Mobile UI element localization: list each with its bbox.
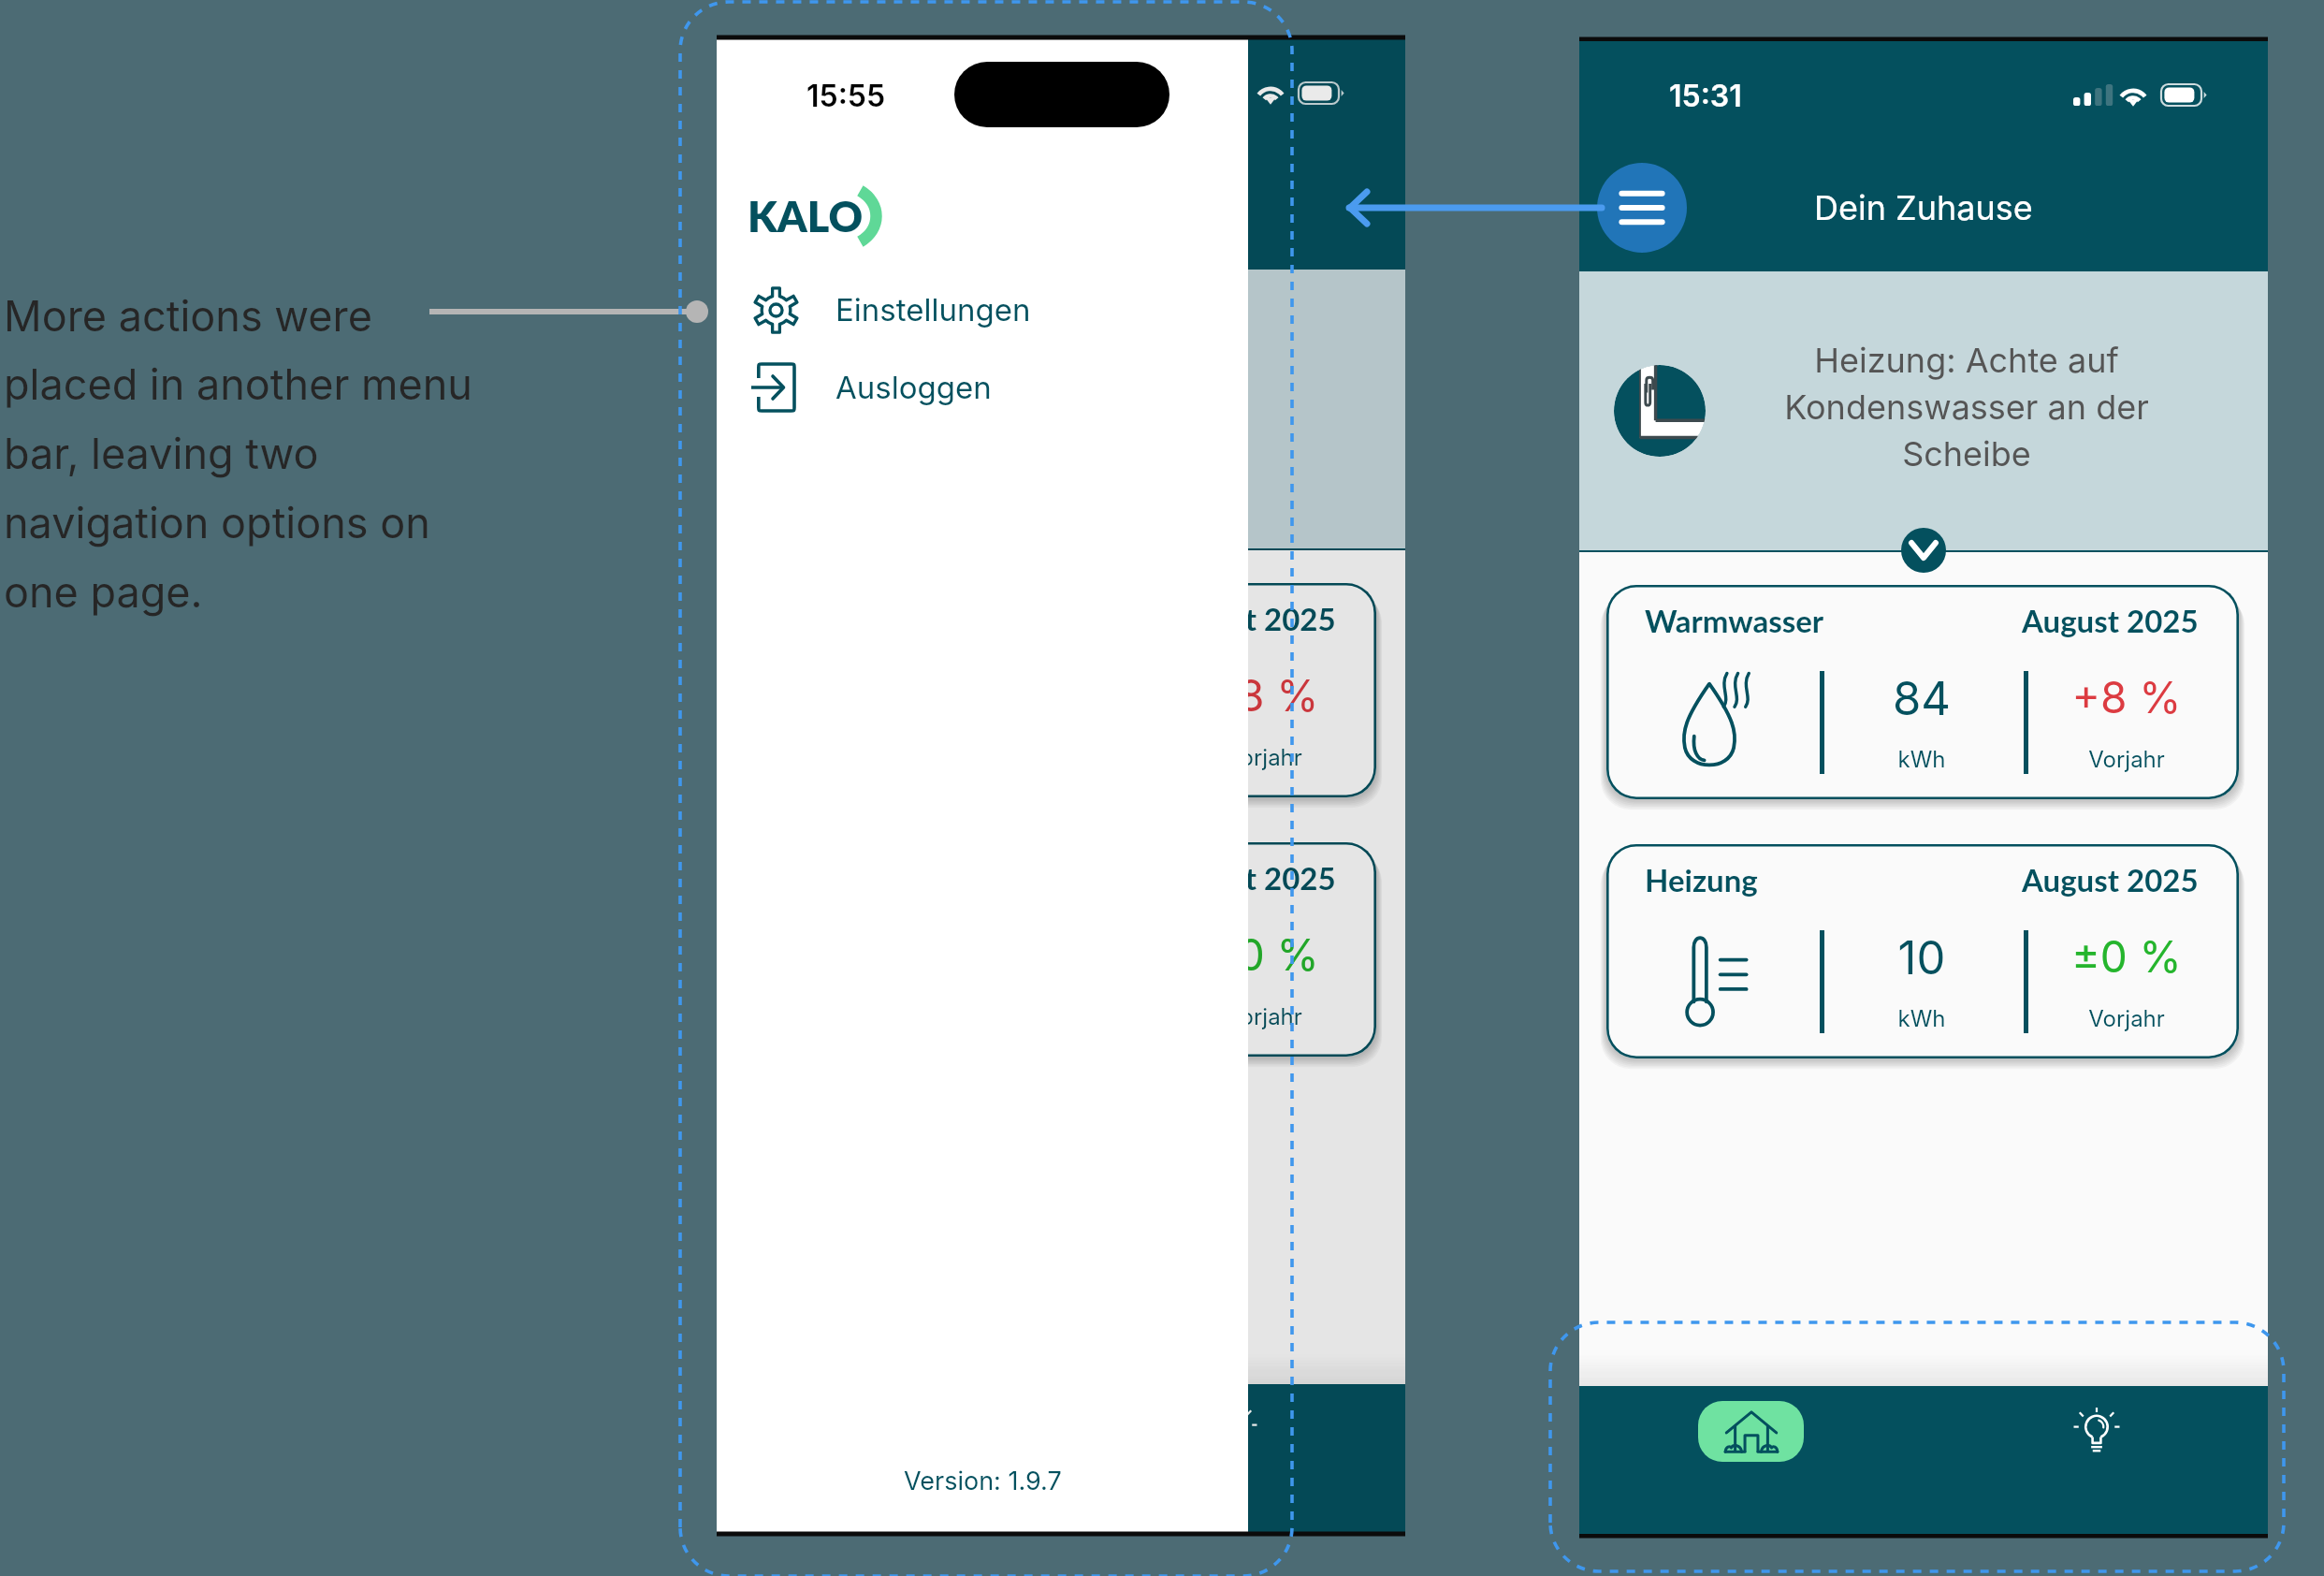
button[interactable]: Open navigation menu (1597, 163, 1687, 253)
staticText: Heizung: Achte auf Kondenswasser an der … (1784, 340, 2149, 474)
staticText: Dein Zuhause (1814, 187, 2033, 228)
staticText: August 2025 (1159, 600, 1336, 637)
staticText: Vorjahr (1168, 744, 1360, 771)
staticText: kWh (1824, 1005, 2019, 1032)
staticText: 15:55 (806, 78, 886, 114)
staticText: Einstellungen (835, 291, 1031, 328)
staticText: August 2025 (1159, 859, 1336, 897)
staticText: 15:31 (1669, 78, 1742, 114)
staticText: Vorjahr (2030, 1005, 2223, 1032)
staticText: Vorjahr (1168, 1003, 1360, 1030)
staticText: Heizung (1645, 861, 1758, 898)
button[interactable]: Heizung (1606, 844, 2239, 1058)
staticText: ±0 % (1168, 928, 1360, 981)
staticText: KALO (748, 191, 864, 241)
staticText: More actions were placed in another menu… (4, 290, 528, 618)
staticText: Ausloggen (835, 369, 992, 406)
staticText: August 2025 (2022, 861, 2199, 898)
button[interactable]: Expand tip (1901, 528, 1946, 573)
staticText: Version: 1.9.7 (904, 1466, 1062, 1496)
staticText: August 2025 (2022, 602, 2199, 639)
button[interactable]: Warmwasser (744, 583, 1376, 797)
button[interactable]: Ausloggen (726, 348, 1119, 427)
staticText: ±0 % (2030, 930, 2223, 983)
staticText: 84 (1824, 671, 2019, 726)
button[interactable]: Energy saving tips (2043, 1401, 2149, 1462)
button[interactable]: Home (1698, 1401, 1804, 1462)
staticText: Vorjahr (2030, 746, 2223, 773)
button[interactable]: Einstellungen (726, 270, 1119, 349)
staticText: kWh (1824, 746, 2019, 773)
button[interactable]: Warmwasser (1606, 585, 2239, 799)
staticText: +8 % (2030, 671, 2223, 723)
staticText: Warmwasser (1645, 602, 1824, 639)
staticText: +8 % (1168, 669, 1360, 722)
staticText: 10 (1824, 930, 2019, 985)
button[interactable]: Heizung (744, 842, 1376, 1057)
